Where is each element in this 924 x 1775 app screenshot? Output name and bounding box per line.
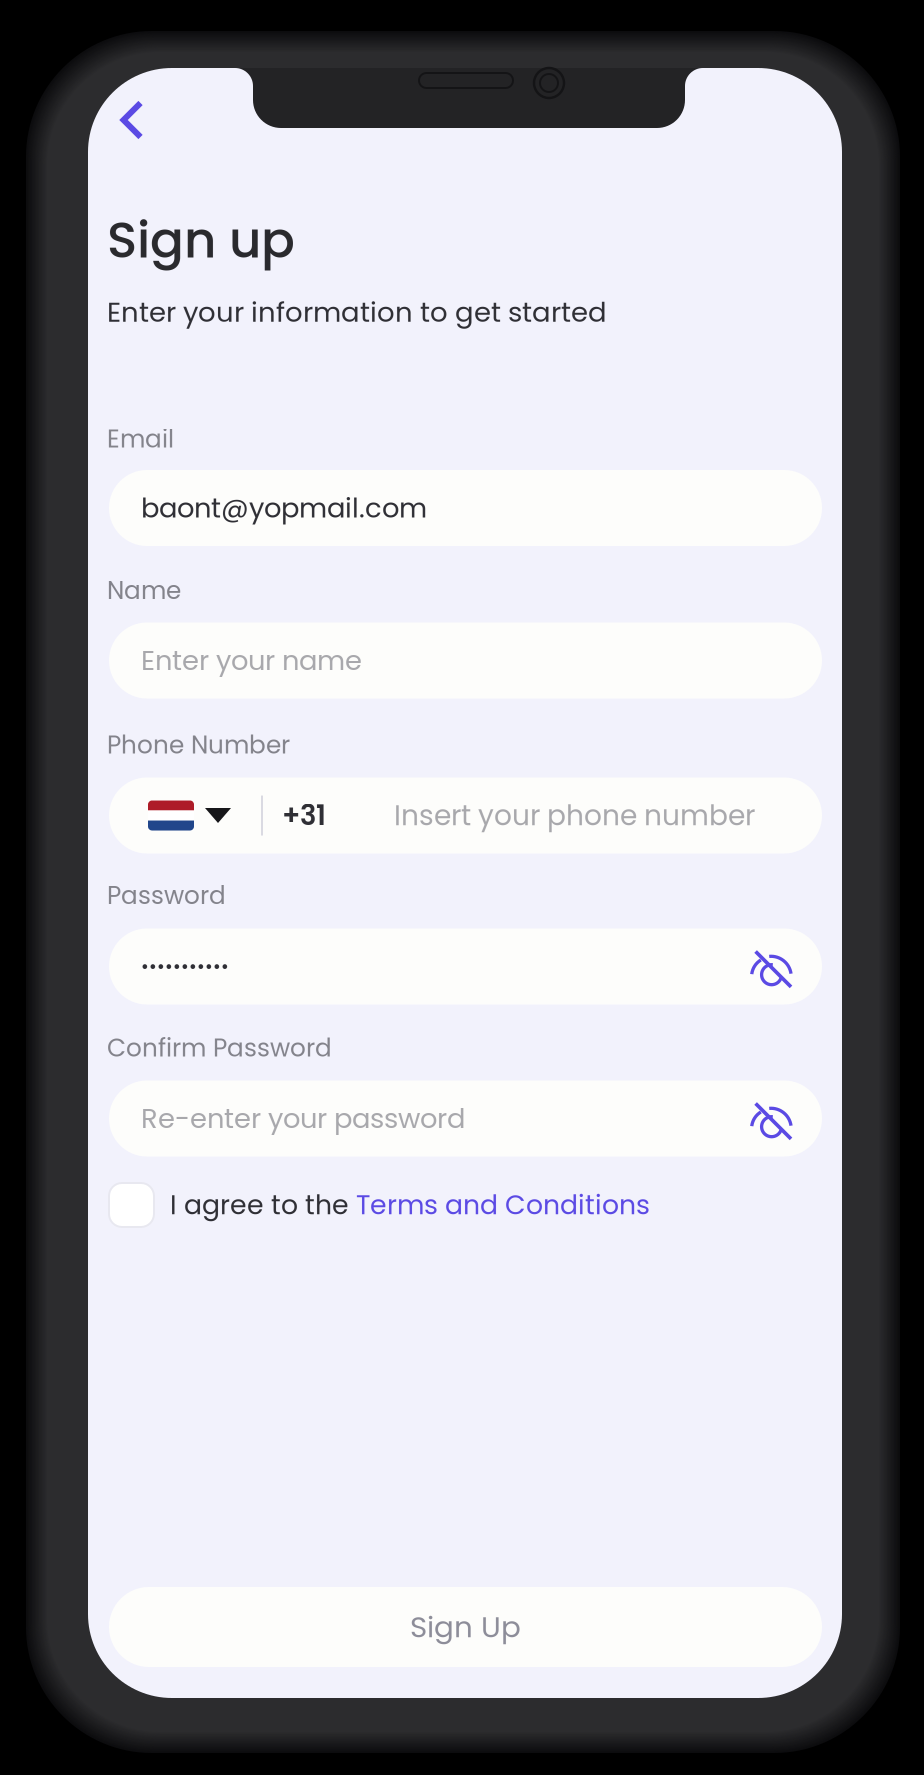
staticText: Confirm Password: [107, 1030, 332, 1065]
button[interactable]: Select country code: [109, 777, 261, 853]
staticText: Email: [107, 422, 174, 456]
staticText: Terms and Conditions: [356, 1186, 650, 1224]
staticText: •••••••••••: [141, 953, 229, 979]
staticText: Name: [107, 573, 181, 607]
staticText: Enter your name: [141, 641, 362, 680]
button[interactable]: Show confirmed password: [736, 1080, 822, 1156]
button[interactable]: Back: [94, 82, 170, 158]
button[interactable]: Sign Up: [109, 1587, 822, 1667]
staticText: Sign up: [107, 205, 295, 275]
staticText: Enter your information to get started: [107, 293, 607, 331]
staticText: +31: [282, 796, 326, 835]
staticText: Sign Up: [410, 1606, 521, 1648]
staticText: Insert your phone number: [394, 796, 755, 835]
button[interactable]: Show password: [736, 928, 822, 1004]
button[interactable]: I agree to the: [109, 1174, 822, 1236]
staticText: baont@yopmail.com: [141, 489, 427, 527]
staticText: Re-enter your password: [141, 1099, 465, 1138]
staticText: I agree to the: [170, 1186, 356, 1224]
staticText: Phone Number: [107, 727, 290, 762]
staticText: Password: [107, 878, 226, 912]
